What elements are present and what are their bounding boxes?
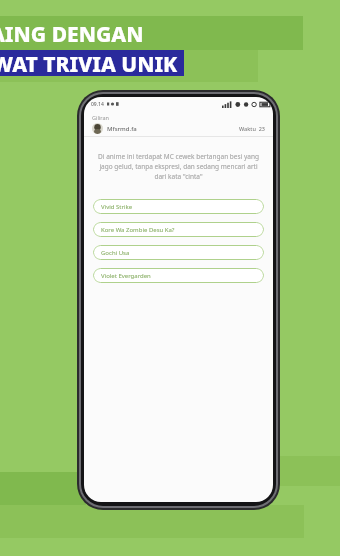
button[interactable]: Vivid Strike bbox=[93, 199, 264, 214]
staticText: Violet Evergarden bbox=[101, 272, 151, 280]
staticText: Kore Wa Zombie Desu Ka? bbox=[101, 226, 175, 234]
staticText: Waktu 23 bbox=[239, 125, 265, 132]
staticText: 09.14 bbox=[91, 101, 104, 108]
staticText: WAT TRIVIA UNIK bbox=[0, 50, 178, 76]
staticText: Giliran bbox=[92, 114, 109, 121]
staticText: Mfsrmd.fa bbox=[107, 125, 137, 133]
button[interactable]: Violet Evergarden bbox=[93, 268, 264, 283]
button[interactable]: Kore Wa Zombie Desu Ka? bbox=[93, 222, 264, 237]
staticText: Vivid Strike bbox=[101, 203, 133, 211]
button[interactable]: Gochi Usa bbox=[93, 245, 264, 260]
staticText: AING DENGAN bbox=[0, 20, 144, 49]
staticText: Gochi Usa bbox=[101, 249, 130, 257]
staticText: Di anime ini terdapat MC cewek bertangan… bbox=[96, 152, 261, 181]
